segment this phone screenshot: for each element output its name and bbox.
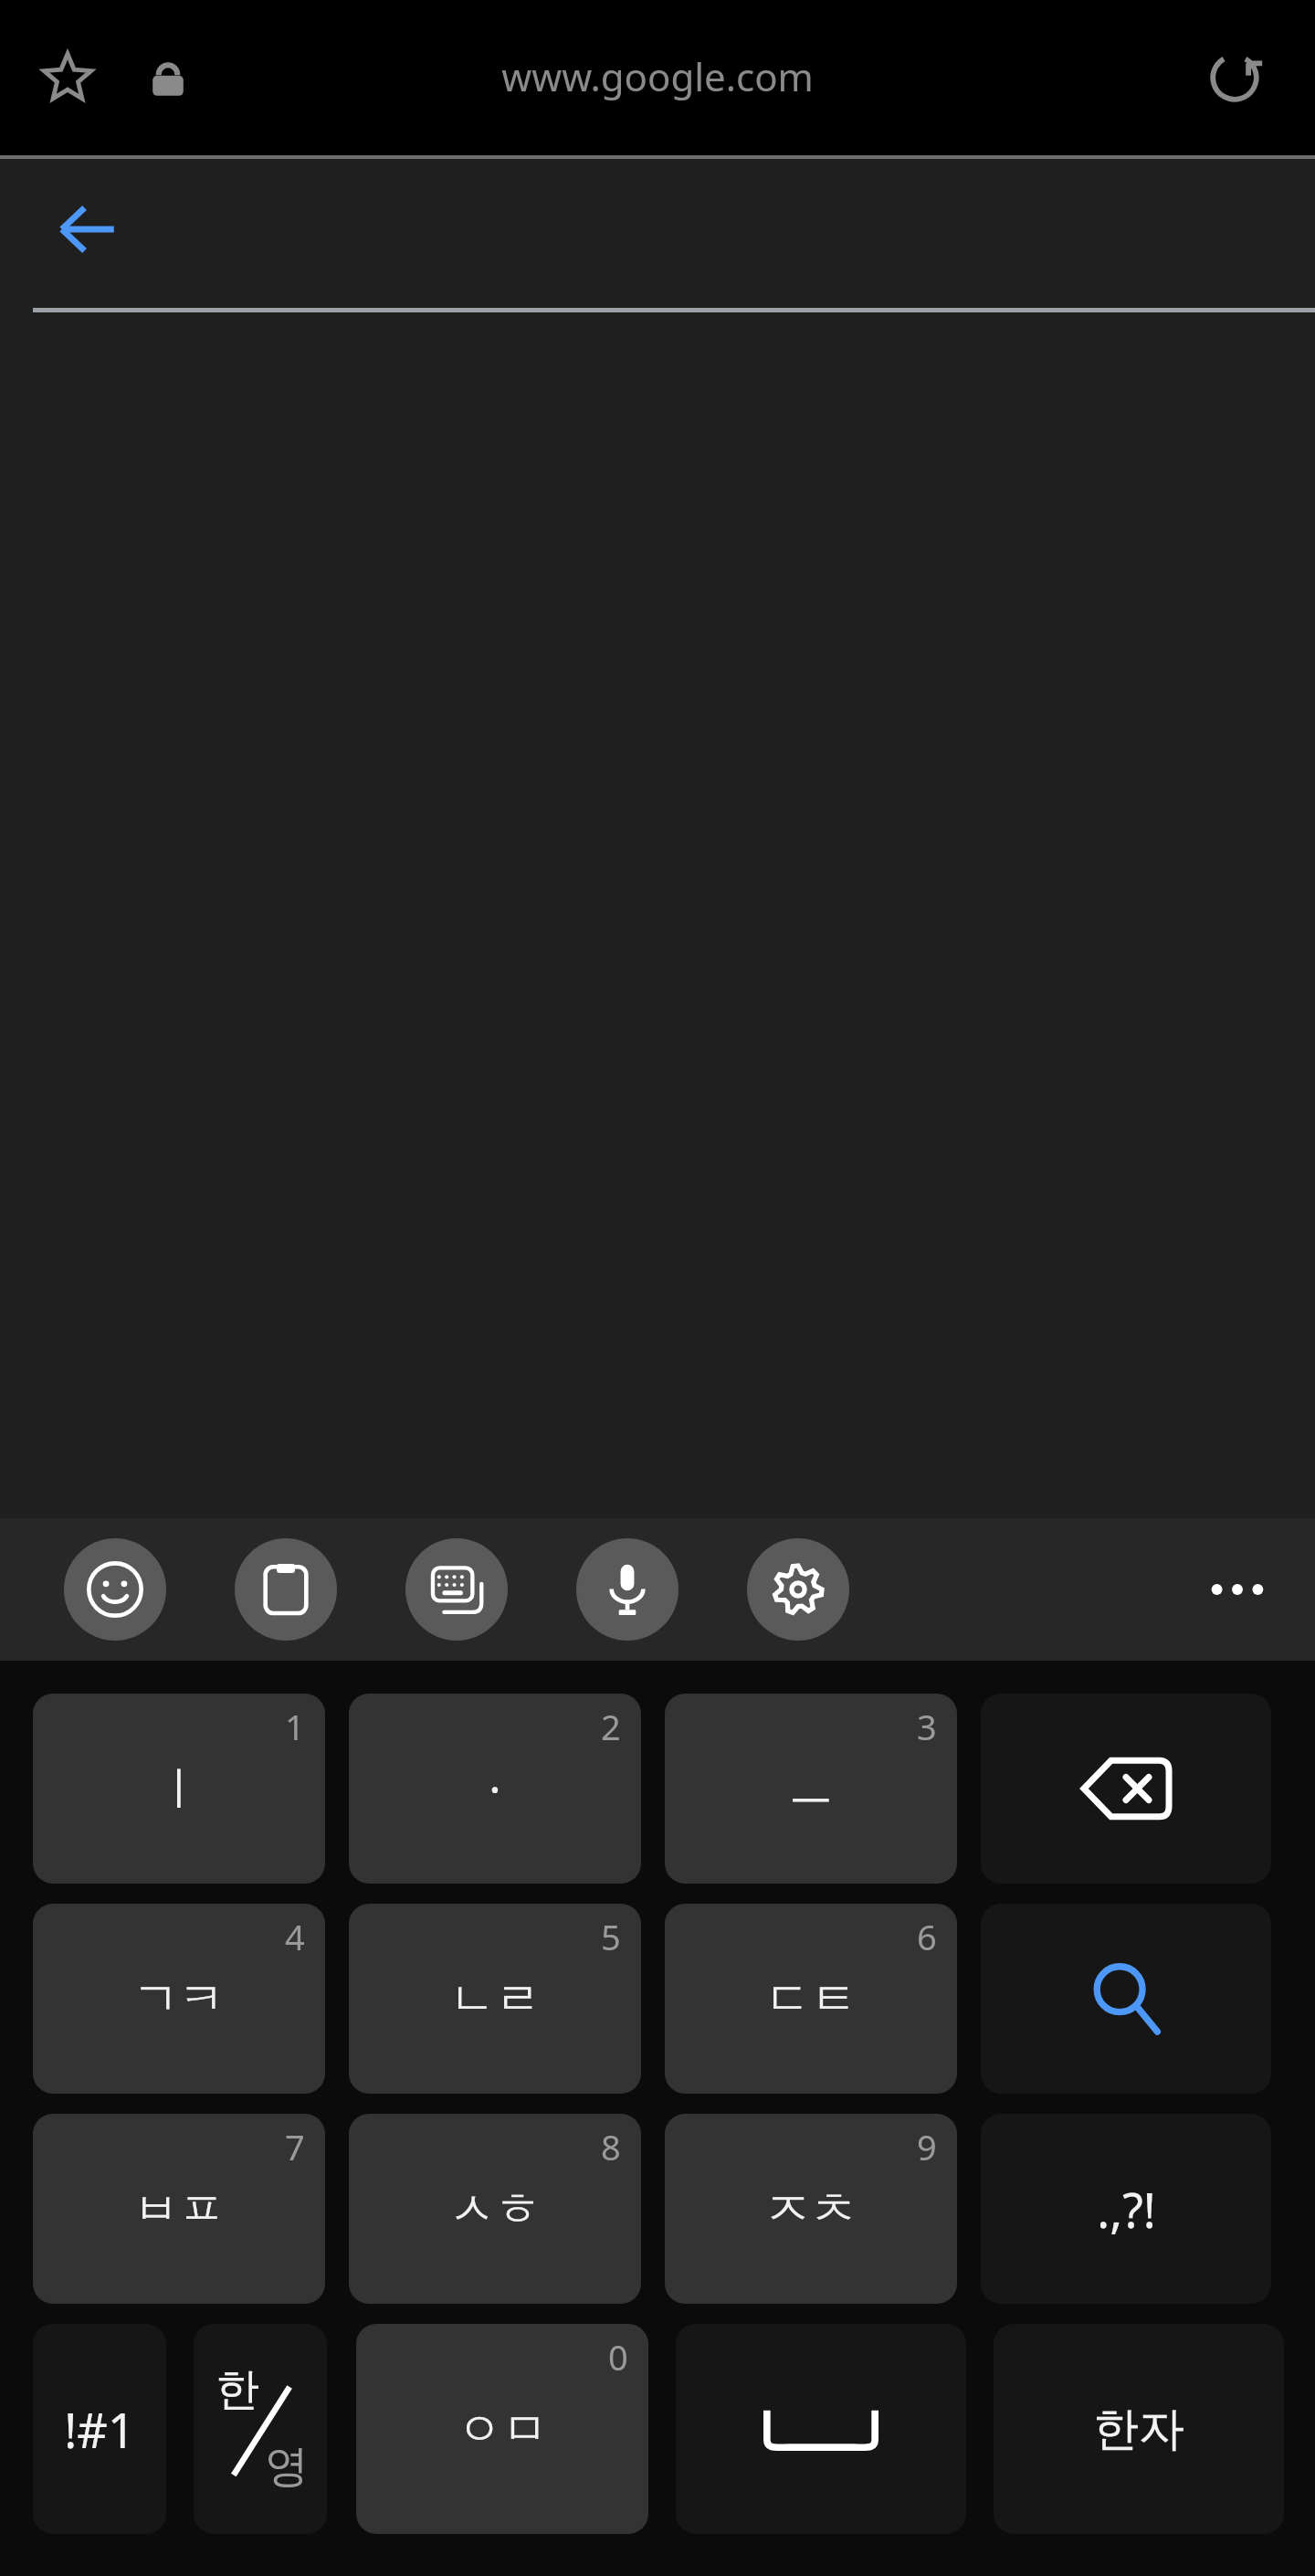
button[interactable]: !#1	[33, 2324, 166, 2534]
staticText: ·	[489, 1758, 501, 1820]
staticText: 2	[601, 1703, 621, 1750]
button[interactable]: Voice input	[576, 1538, 679, 1641]
staticText: 영	[265, 2439, 309, 2494]
staticText: 5	[601, 1913, 621, 1960]
staticText: 1	[285, 1703, 305, 1750]
staticText: 9	[917, 2123, 937, 2170]
staticText: 6	[917, 1913, 937, 1960]
button[interactable]: .,?!	[981, 2114, 1271, 2304]
button[interactable]: 4	[33, 1904, 325, 2094]
staticText: ㅇㅁ	[457, 2401, 548, 2458]
staticText: ㅡ	[788, 1760, 834, 1818]
staticText: ㅈㅊ	[765, 2180, 857, 2238]
staticText: 한	[216, 2362, 259, 2417]
staticText: 3	[917, 1703, 937, 1750]
button[interactable]: Clipboard	[235, 1538, 337, 1641]
button[interactable]: 1	[33, 1694, 325, 1884]
button[interactable]: Secure connection	[137, 48, 199, 110]
staticText: ㅣ	[156, 1760, 202, 1818]
staticText: ㄱㅋ	[133, 1970, 225, 2028]
staticText: www.google.com	[501, 50, 814, 102]
staticText: !#1	[64, 2397, 135, 2462]
staticText: ㄴㄹ	[449, 1970, 541, 2028]
button[interactable]: Settings	[747, 1538, 849, 1641]
staticText: 0	[608, 2333, 628, 2381]
button[interactable]: Search	[981, 1904, 1271, 2094]
button[interactable]: Emoji	[64, 1538, 166, 1641]
staticText: 7	[285, 2123, 305, 2170]
button[interactable]: 9	[665, 2114, 957, 2304]
button[interactable]: 5	[349, 1904, 641, 2094]
staticText: ㄷㅌ	[765, 1970, 857, 2028]
button[interactable]: Reload	[1191, 34, 1278, 121]
button[interactable]: 3	[665, 1694, 957, 1884]
staticText: .,?!	[1097, 2177, 1156, 2242]
button[interactable]: 2	[349, 1694, 641, 1884]
staticText: 4	[285, 1913, 305, 1960]
button[interactable]: 한자	[994, 2324, 1284, 2534]
button[interactable]: 7	[33, 2114, 325, 2304]
button[interactable]: Backspace	[981, 1694, 1271, 1884]
button[interactable]: Switch keyboard	[405, 1538, 508, 1641]
button[interactable]: Space	[676, 2324, 966, 2534]
button[interactable]: 8	[349, 2114, 641, 2304]
button[interactable]: More options	[1183, 1535, 1292, 1644]
staticText: 8	[601, 2123, 621, 2170]
button[interactable]: Korean English toggle	[194, 2324, 327, 2534]
staticText: ㅅㅎ	[449, 2180, 541, 2238]
button[interactable]: 0	[356, 2324, 648, 2534]
staticText: ㅂㅍ	[133, 2180, 225, 2238]
button[interactable]: Bookmark	[33, 44, 102, 113]
staticText: 한자	[1093, 2401, 1184, 2458]
button[interactable]: 6	[665, 1904, 957, 2094]
button[interactable]: Back	[37, 179, 137, 280]
